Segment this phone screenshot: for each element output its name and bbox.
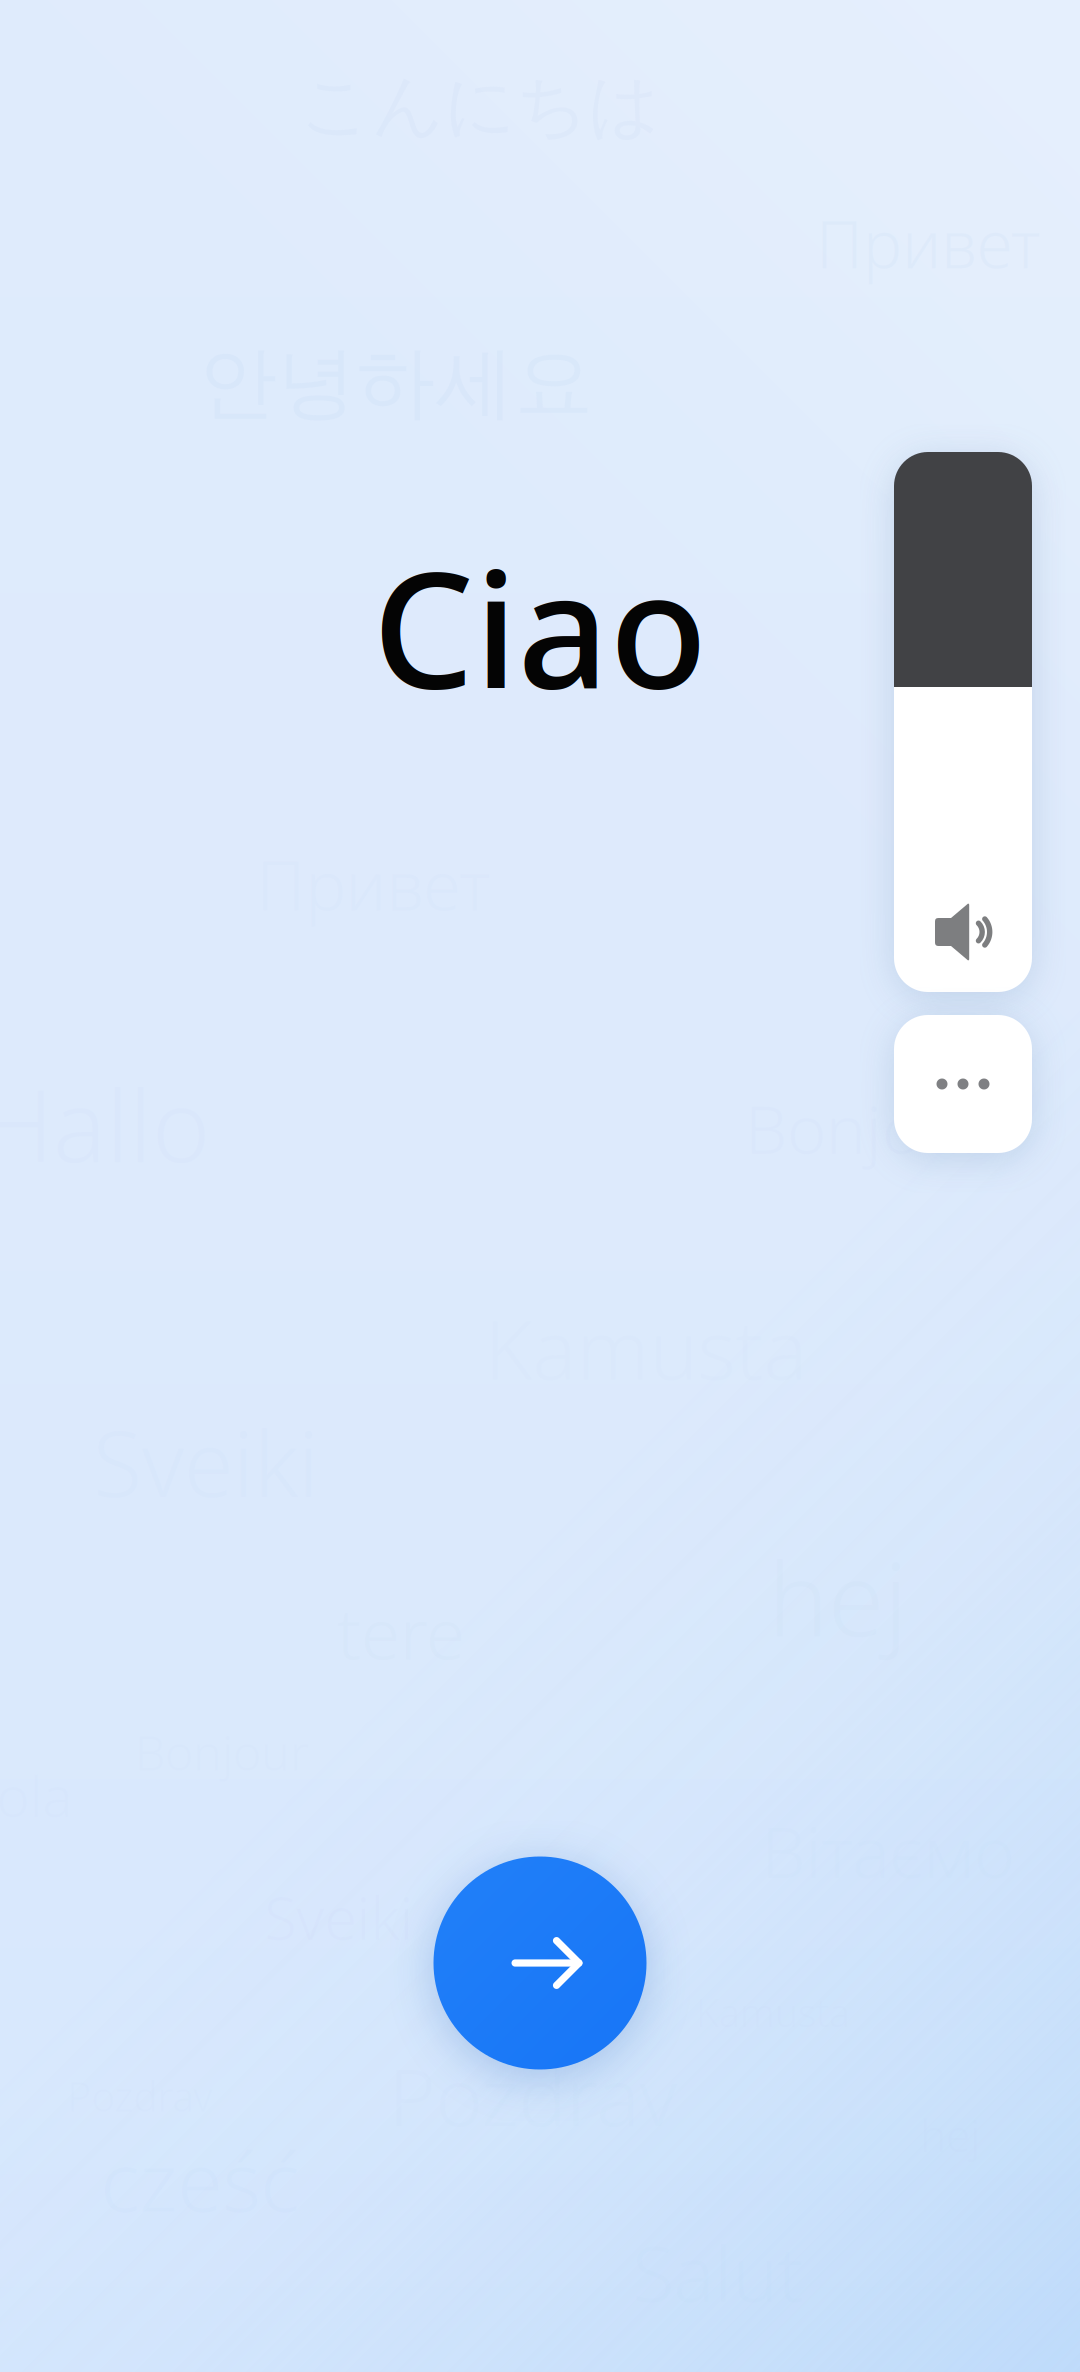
staticText: Ciao	[372, 520, 707, 732]
button[interactable]: More options	[894, 1015, 1032, 1153]
button[interactable]: Next	[433, 1856, 646, 2069]
button[interactable]: Volume	[894, 452, 1032, 992]
staticText: Pozdrav	[388, 2042, 677, 2148]
staticText: Bonjour	[745, 1084, 987, 1172]
